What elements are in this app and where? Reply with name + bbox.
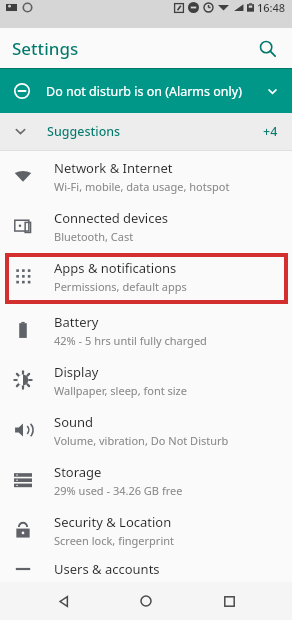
staticText: 42% - 5 hrs until fully charged: [54, 333, 207, 348]
button[interactable]: Users & accounts: [0, 555, 292, 582]
staticText: +4: [263, 123, 278, 140]
staticText: Display: [54, 363, 99, 381]
staticText: Battery: [54, 313, 99, 331]
staticText: Settings: [12, 37, 79, 60]
button[interactable]: Back: [45, 582, 83, 620]
staticText: Permissions, default apps: [54, 279, 187, 294]
button[interactable]: Recents: [210, 582, 248, 620]
staticText: Volume, vibration, Do Not Disturb: [54, 433, 229, 448]
staticText: Apps & notifications: [54, 259, 177, 277]
button[interactable]: Security & Location: [0, 505, 292, 555]
button[interactable]: Battery: [0, 305, 292, 355]
button[interactable]: Home: [127, 582, 165, 620]
button[interactable]: Suggestions: [0, 113, 292, 150]
staticText: Bluetooth, Cast: [54, 229, 134, 244]
button[interactable]: Sound: [0, 405, 292, 455]
staticText: 16:48: [257, 0, 286, 15]
staticText: Sound: [54, 413, 94, 431]
staticText: Storage: [54, 463, 102, 481]
staticText: Connected devices: [54, 209, 168, 227]
staticText: Suggestions: [47, 123, 121, 140]
staticText: Wi-Fi, mobile, data usage, hotspot: [54, 179, 230, 194]
staticText: 29% used - 34.26 GB free: [54, 483, 183, 498]
button[interactable]: Network & Internet: [0, 151, 292, 201]
button[interactable]: Connected devices: [0, 201, 292, 251]
staticText: Screen lock, fingerprint: [54, 533, 175, 548]
button[interactable]: Storage: [0, 455, 292, 505]
button[interactable]: Do not disturb is on (Alarms only): [0, 69, 292, 113]
button[interactable]: Apps & notifications: [0, 251, 292, 301]
staticText: Security & Location: [54, 513, 172, 531]
staticText: Network & Internet: [54, 159, 173, 177]
button[interactable]: Display: [0, 355, 292, 405]
staticText: Wallpaper, sleep, font size: [54, 383, 187, 398]
staticText: Users & accounts: [54, 560, 160, 578]
button[interactable]: Search: [252, 33, 282, 63]
staticText: Do not disturb is on (Alarms only): [46, 83, 242, 100]
